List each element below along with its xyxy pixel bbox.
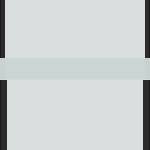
button[interactable]: Lower panel [0, 79, 150, 150]
button[interactable]: Upper panel [0, 0, 150, 58]
